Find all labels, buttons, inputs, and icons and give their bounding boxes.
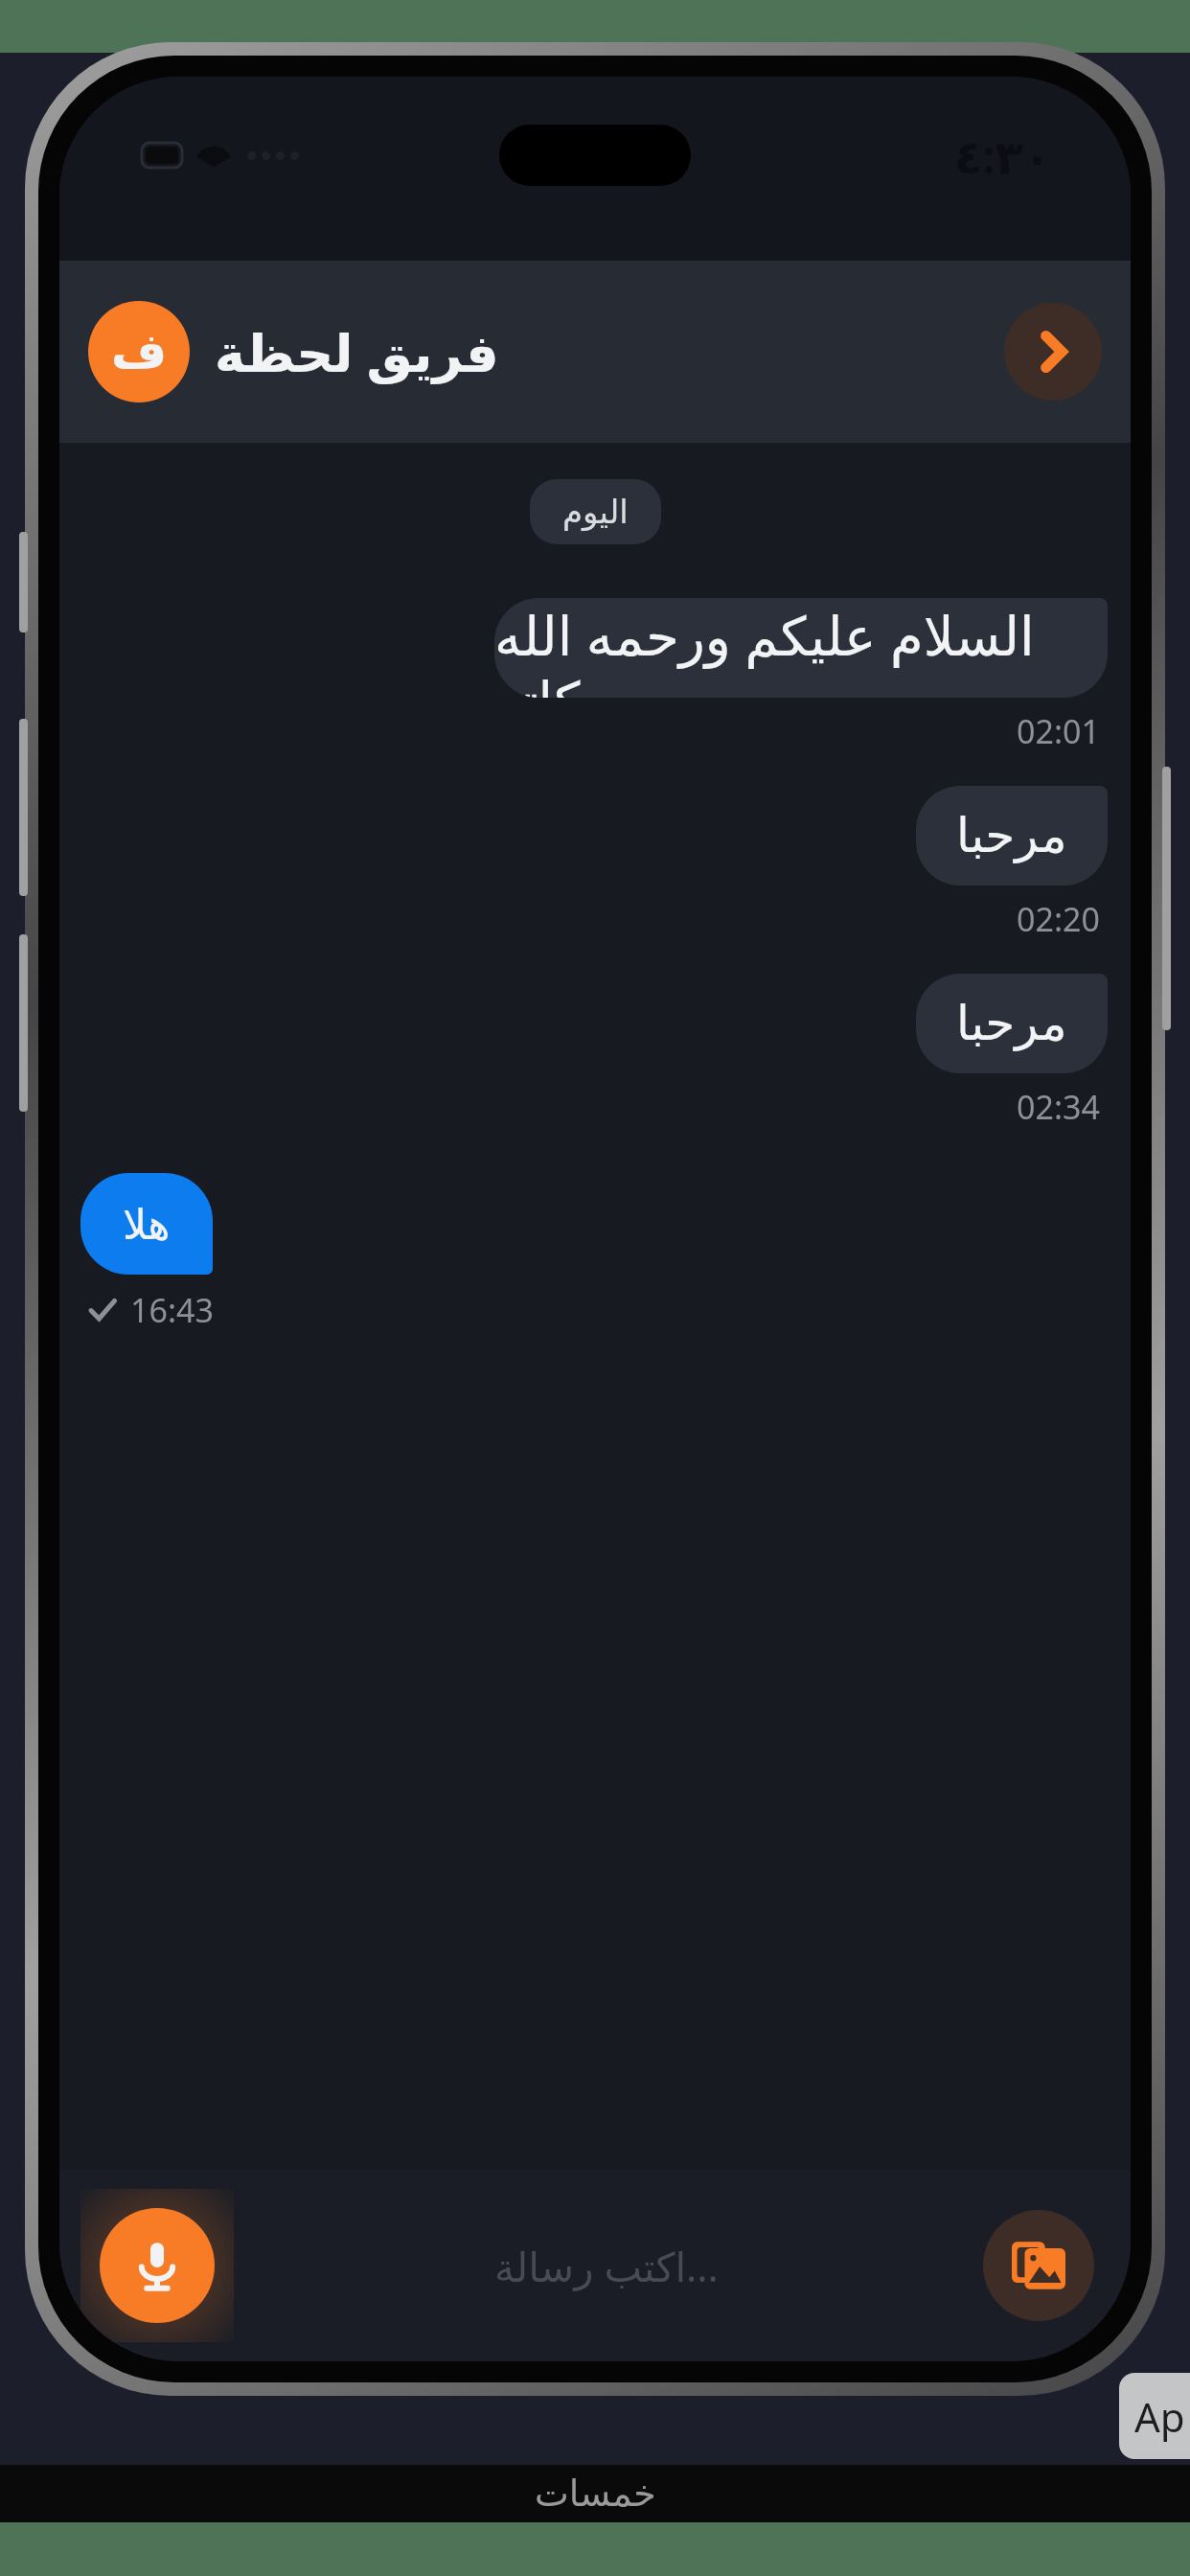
staticText: مرحبا: [956, 996, 1067, 1051]
button[interactable]: Send image: [983, 2210, 1094, 2321]
button[interactable]: السلام عليكم ورحمه الله وبركاته: [494, 598, 1108, 698]
staticText: هلا: [123, 1200, 171, 1249]
staticText: اليوم: [562, 493, 629, 531]
button[interactable]: اكتب رسالة...: [494, 2239, 719, 2293]
button[interactable]: Ap: [1119, 2373, 1190, 2459]
staticText: 16:43: [130, 1288, 214, 1332]
button[interactable]: Chat details: [1004, 303, 1102, 401]
staticText: فريق لحظة: [215, 316, 499, 387]
button[interactable]: Record voice message: [100, 2208, 215, 2323]
staticText: السلام عليكم ورحمه الله وبركاته: [494, 598, 1108, 698]
staticText: ف: [111, 324, 168, 379]
button[interactable]: هلا: [80, 1173, 213, 1275]
staticText: مرحبا: [956, 808, 1067, 863]
staticText: 02:01: [1017, 709, 1100, 753]
staticText: Ap: [1134, 2389, 1185, 2444]
button[interactable]: ف: [59, 261, 1131, 443]
staticText: خمسات: [535, 2472, 656, 2515]
button[interactable]: مرحبا: [916, 974, 1108, 1073]
staticText: ٤:٣٠: [954, 125, 1052, 187]
staticText: 02:20: [1017, 897, 1100, 941]
button[interactable]: مرحبا: [916, 786, 1108, 885]
staticText: 02:34: [1017, 1085, 1100, 1129]
